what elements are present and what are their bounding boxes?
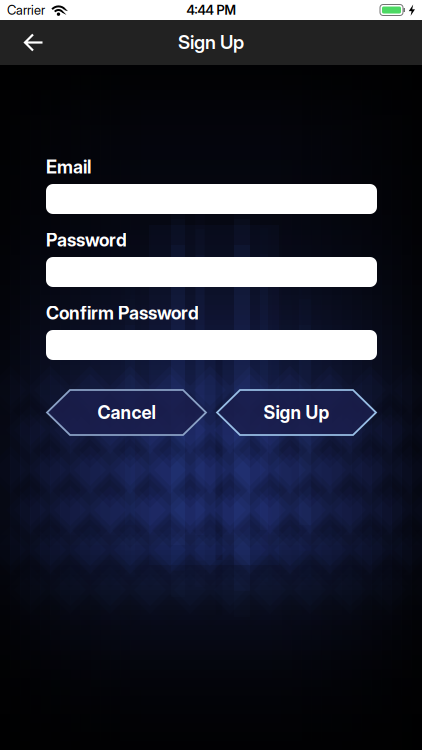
staticText: 4:44 PM xyxy=(186,2,235,18)
staticText: Cancel xyxy=(97,402,155,423)
staticText: Sign Up xyxy=(263,402,329,423)
button[interactable]: Cancel xyxy=(47,390,206,435)
staticText: Password xyxy=(46,229,127,251)
button[interactable]: Sign Up xyxy=(217,390,376,435)
staticText: Carrier xyxy=(7,2,45,18)
button[interactable]: Back xyxy=(0,20,44,65)
staticText: Email xyxy=(46,156,91,178)
staticText: Sign Up xyxy=(178,30,244,53)
staticText: Confirm Password xyxy=(46,302,199,324)
